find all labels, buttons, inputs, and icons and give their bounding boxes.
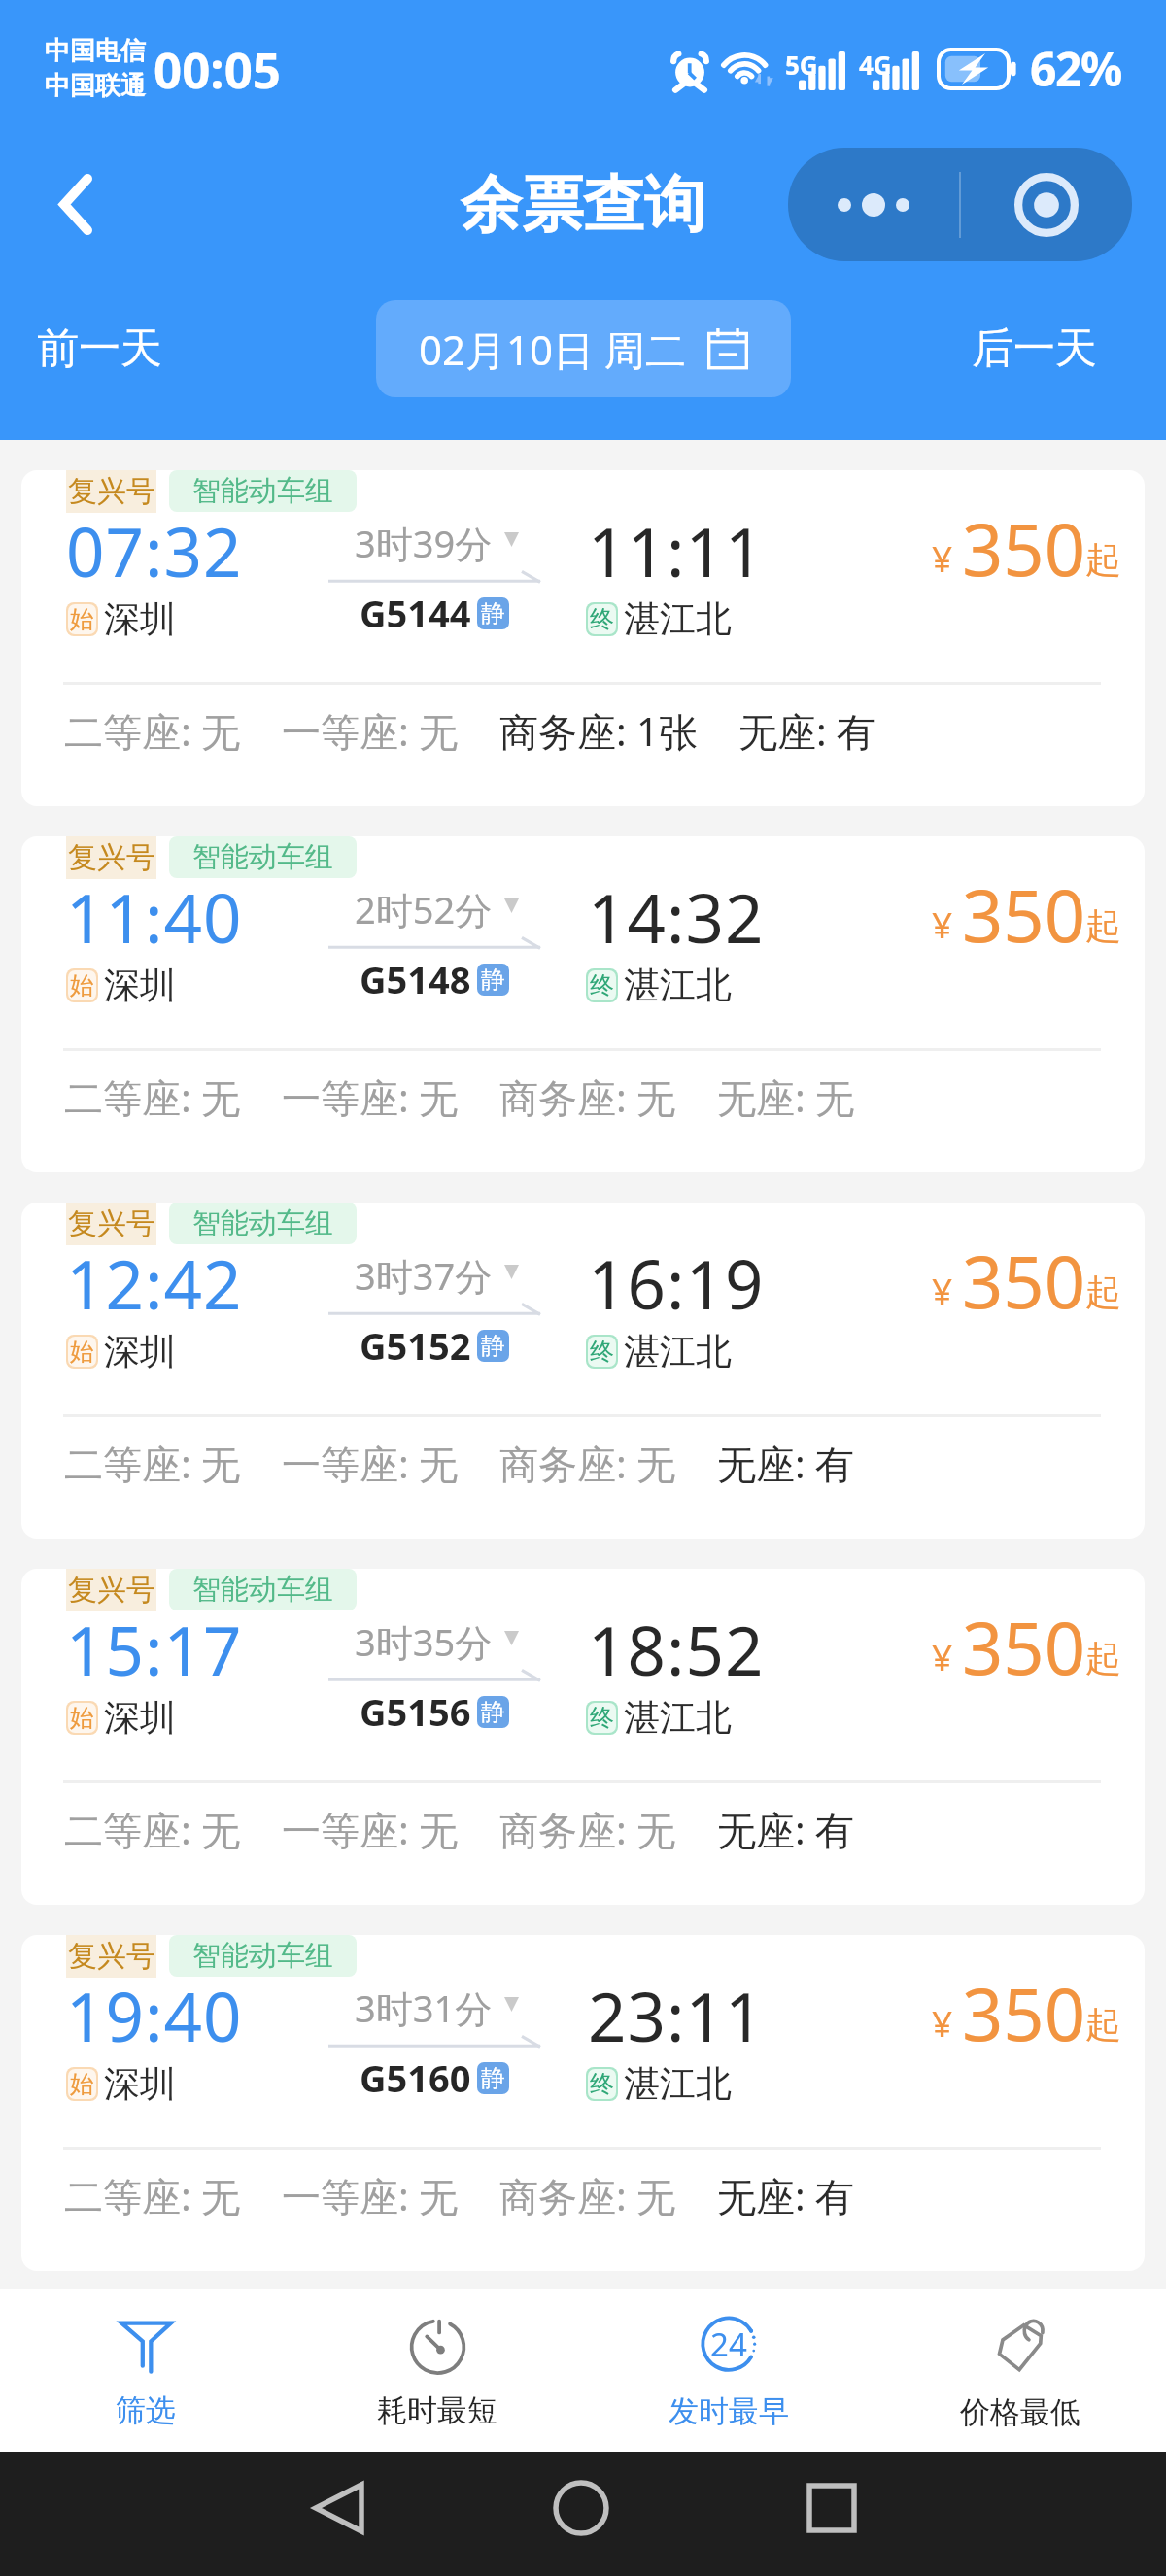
- staticText: 商务座: 1张: [499, 704, 698, 758]
- staticText: G5160: [360, 2052, 471, 2103]
- button[interactable]: 24: [583, 2289, 874, 2452]
- staticText: G5152: [360, 1320, 471, 1371]
- staticText: 价格最低: [960, 2393, 1080, 2431]
- staticText: 始: [70, 1703, 94, 1733]
- button[interactable]: Home: [525, 2452, 636, 2563]
- button[interactable]: 复兴号: [21, 470, 1145, 806]
- staticText: 智能动车组: [192, 1205, 333, 1241]
- staticText: 无座: 有: [717, 1803, 855, 1856]
- button[interactable]: 耗时最短: [291, 2289, 583, 2452]
- staticText: G5156: [360, 1686, 471, 1737]
- staticText: 终: [590, 970, 614, 1000]
- staticText: G5144: [360, 588, 471, 638]
- staticText: G5148: [360, 954, 471, 1004]
- staticText: 余票查询: [461, 166, 705, 243]
- staticText: 耗时最短: [377, 2391, 497, 2429]
- staticText: 终: [590, 604, 614, 634]
- staticText: 350: [962, 865, 1085, 964]
- staticText: ¥: [932, 533, 953, 582]
- staticText: 02月10日 周二: [419, 322, 687, 377]
- staticText: 商务座: 无: [499, 1437, 676, 1490]
- staticText: 4G: [859, 48, 892, 82]
- staticText: 湛江北: [624, 1329, 732, 1374]
- staticText: 350: [962, 1598, 1085, 1696]
- staticText: 16:19: [588, 1237, 765, 1329]
- button[interactable]: Close: [961, 148, 1132, 261]
- staticText: 5G: [785, 48, 818, 82]
- staticText: 2时52分: [355, 884, 493, 934]
- button[interactable]: 02月10日 周二: [376, 300, 791, 397]
- staticText: 商务座: 无: [499, 1803, 676, 1856]
- button[interactable]: 复兴号: [21, 1203, 1145, 1539]
- staticText: 复兴号: [68, 473, 155, 510]
- staticText: 终: [590, 1337, 614, 1367]
- staticText: 无座: 有: [738, 704, 876, 758]
- staticText: 二等座: 无: [64, 704, 241, 758]
- staticText: 静: [481, 1697, 505, 1727]
- button[interactable]: 复兴号: [21, 1569, 1145, 1905]
- staticText: 后一天: [972, 322, 1097, 375]
- staticText: 智能动车组: [192, 1572, 333, 1608]
- staticText: 3时31分: [355, 1983, 493, 2033]
- staticText: 一等座: 无: [282, 1803, 459, 1856]
- staticText: ¥: [932, 1266, 953, 1314]
- button[interactable]: 后一天: [950, 305, 1118, 392]
- staticText: ¥: [932, 1998, 953, 2047]
- staticText: 静: [481, 2063, 505, 2093]
- staticText: 18:52: [588, 1604, 765, 1695]
- staticText: 一等座: 无: [282, 1070, 459, 1124]
- staticText: 11:40: [66, 871, 243, 963]
- button[interactable]: Back: [27, 155, 124, 253]
- staticText: 3时35分: [355, 1616, 493, 1667]
- staticText: 12:42: [66, 1237, 243, 1329]
- staticText: 00:05: [154, 35, 282, 102]
- staticText: 二等座: 无: [64, 1070, 241, 1124]
- button[interactable]: More options: [788, 148, 959, 261]
- button[interactable]: 复兴号: [21, 836, 1145, 1172]
- button[interactable]: 价格最低: [874, 2289, 1166, 2452]
- staticText: 起: [1085, 537, 1121, 583]
- staticText: 终: [590, 2069, 614, 2099]
- staticText: 350: [962, 1964, 1085, 2062]
- staticText: 14:32: [588, 871, 765, 963]
- staticText: 深圳: [104, 963, 176, 1008]
- staticText: 350: [962, 499, 1085, 597]
- button[interactable]: 复兴号: [21, 1935, 1145, 2271]
- staticText: 智能动车组: [192, 1938, 333, 1974]
- staticText: 一等座: 无: [282, 2169, 459, 2222]
- button[interactable]: 前一天: [16, 305, 184, 392]
- button[interactable]: 筛选: [0, 2289, 291, 2452]
- staticText: 起: [1085, 1270, 1121, 1315]
- button[interactable]: Recent apps: [775, 2452, 887, 2563]
- staticText: 深圳: [104, 1329, 176, 1374]
- staticText: 复兴号: [68, 839, 155, 876]
- staticText: 终: [590, 1703, 614, 1733]
- staticText: 静: [481, 965, 505, 995]
- button[interactable]: Back: [283, 2452, 394, 2563]
- staticText: 商务座: 无: [499, 2169, 676, 2222]
- staticText: 二等座: 无: [64, 1437, 241, 1490]
- staticText: 15:17: [66, 1604, 243, 1695]
- staticText: 深圳: [104, 1695, 176, 1741]
- staticText: 23:11: [588, 1970, 765, 2061]
- staticText: 二等座: 无: [64, 2169, 241, 2222]
- staticText: 中国联通: [45, 70, 146, 102]
- staticText: 湛江北: [624, 1695, 732, 1741]
- staticText: 一等座: 无: [282, 704, 459, 758]
- staticText: 始: [70, 604, 94, 634]
- staticText: 深圳: [104, 2061, 176, 2107]
- staticText: 始: [70, 1337, 94, 1367]
- staticText: 11:11: [588, 505, 765, 596]
- staticText: 深圳: [104, 596, 176, 642]
- staticText: 中国电信: [45, 35, 146, 67]
- staticText: 07:32: [66, 505, 243, 596]
- staticText: 起: [1085, 2002, 1121, 2048]
- staticText: 始: [70, 2069, 94, 2099]
- staticText: 19:40: [66, 1970, 243, 2061]
- staticText: 智能动车组: [192, 839, 333, 875]
- staticText: 湛江北: [624, 2061, 732, 2107]
- staticText: 湛江北: [624, 596, 732, 642]
- staticText: 无座: 无: [717, 1070, 855, 1124]
- staticText: 3时37分: [355, 1250, 493, 1301]
- staticText: 湛江北: [624, 963, 732, 1008]
